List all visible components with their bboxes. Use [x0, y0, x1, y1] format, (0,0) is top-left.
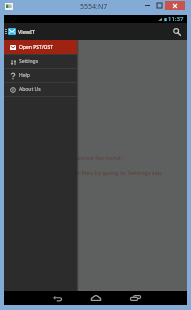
- staticText: Open PST/OST: [19, 44, 54, 51]
- button[interactable]: Minimize: [141, 1, 153, 10]
- button[interactable]: Back: [45, 291, 69, 305]
- button[interactable]: Search: [168, 23, 186, 40]
- button[interactable]: Maximize: [153, 1, 165, 10]
- button[interactable]: Open navigation drawer: [4, 23, 7, 40]
- staticText: Settings: [19, 58, 39, 65]
- staticText: ViewIT: [18, 28, 35, 35]
- button[interactable]: Settings: [4, 55, 77, 68]
- button[interactable]: Recent apps: [123, 291, 147, 305]
- button[interactable]: Close: [165, 1, 185, 10]
- staticText: About Us: [19, 86, 41, 93]
- button[interactable]: About Us: [4, 83, 77, 96]
- staticText: Help: [19, 72, 30, 79]
- staticText: 11:37: [168, 15, 184, 23]
- button[interactable]: Open PST/OST: [4, 40, 77, 54]
- staticText: Please add pst/ost files by going to Set…: [28, 169, 163, 177]
- button[interactable]: Help: [4, 69, 77, 82]
- button[interactable]: Home: [84, 291, 108, 305]
- staticText: 5554:N7: [80, 2, 108, 12]
- staticText: No pst/ost files found.!: [69, 155, 123, 162]
